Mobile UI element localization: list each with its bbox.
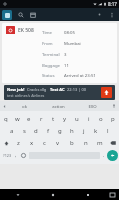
staticText: h bbox=[70, 127, 74, 135]
button[interactable]: a bbox=[5, 125, 18, 137]
staticText: e bbox=[27, 115, 31, 123]
staticText: b bbox=[70, 139, 74, 147]
staticText: g bbox=[58, 127, 62, 135]
button[interactable]: More options bbox=[95, 10, 104, 19]
button[interactable]: p bbox=[107, 113, 119, 125]
staticText: Cracks dlg bbox=[27, 87, 47, 92]
staticText: Arrived at 23:51 bbox=[64, 72, 96, 78]
button[interactable]: l bbox=[102, 125, 114, 137]
button[interactable]: v bbox=[51, 137, 65, 149]
staticText: EK 508 bbox=[18, 27, 34, 34]
staticText: From bbox=[42, 40, 64, 46]
button[interactable]: e bbox=[23, 113, 35, 125]
staticText: n bbox=[84, 139, 88, 147]
button[interactable]: Recent apps bbox=[70, 189, 105, 200]
staticText: New job! bbox=[7, 87, 25, 92]
button[interactable]: o bbox=[95, 113, 107, 125]
staticText: 11 bbox=[64, 62, 69, 68]
button[interactable]: d bbox=[30, 125, 42, 137]
button[interactable]: Emoji bbox=[19, 149, 28, 162]
button[interactable]: r bbox=[35, 113, 47, 125]
staticText: , bbox=[15, 152, 17, 159]
button[interactable]: Home bbox=[35, 189, 70, 200]
staticText: y bbox=[63, 115, 67, 123]
staticText: ?123 bbox=[3, 153, 12, 158]
staticText: z bbox=[17, 139, 20, 147]
staticText: x bbox=[30, 139, 34, 147]
staticText: EXO bbox=[88, 103, 97, 109]
button[interactable]: i bbox=[83, 113, 95, 125]
staticText: o bbox=[99, 115, 103, 123]
staticText: action bbox=[52, 103, 65, 109]
button[interactable]: q bbox=[0, 113, 11, 125]
button[interactable]: Search bbox=[16, 10, 26, 20]
button[interactable]: action bbox=[41, 101, 75, 111]
button[interactable]: k bbox=[90, 125, 102, 137]
staticText: . bbox=[103, 152, 105, 159]
staticText: u bbox=[75, 115, 79, 123]
button[interactable]: More suggestions bbox=[0, 101, 8, 111]
button[interactable]: j bbox=[78, 125, 90, 137]
button[interactable]: z bbox=[12, 137, 25, 149]
button[interactable]: y bbox=[59, 113, 71, 125]
staticText: w bbox=[15, 115, 20, 123]
staticText: i bbox=[88, 115, 90, 123]
staticText: c bbox=[43, 139, 46, 147]
button[interactable]: u bbox=[71, 113, 83, 125]
staticText: f bbox=[47, 127, 50, 135]
button[interactable]: Open alert bbox=[101, 87, 112, 98]
button[interactable]: c bbox=[38, 137, 51, 149]
button[interactable]: , bbox=[13, 149, 19, 162]
staticText: Terminal bbox=[42, 51, 64, 57]
button[interactable]: b bbox=[65, 137, 79, 149]
staticText: v bbox=[56, 139, 60, 147]
button[interactable]: Backspace bbox=[107, 137, 119, 149]
staticText: Mumbai bbox=[64, 40, 81, 46]
staticText: test airlines's Airlines bbox=[7, 93, 45, 98]
staticText: d bbox=[34, 127, 38, 135]
staticText: p bbox=[111, 115, 115, 123]
button[interactable]: New job! bbox=[4, 85, 115, 100]
staticText: s bbox=[23, 127, 26, 135]
staticText: Baggage bbox=[42, 62, 64, 68]
staticText: l bbox=[107, 127, 109, 135]
button[interactable]: x bbox=[25, 137, 38, 149]
button[interactable]: Shift bbox=[0, 137, 12, 149]
button[interactable]: Voice input bbox=[109, 101, 119, 111]
staticText: Test AC bbox=[50, 87, 65, 92]
staticText: t bbox=[52, 115, 55, 123]
button[interactable]: h bbox=[66, 125, 78, 137]
button[interactable]: m bbox=[93, 137, 107, 149]
button[interactable]: EXO bbox=[75, 101, 109, 111]
button[interactable]: Calendar bbox=[28, 10, 38, 20]
staticText: q bbox=[4, 115, 8, 123]
button[interactable]: g bbox=[54, 125, 66, 137]
button[interactable]: ok bbox=[8, 101, 41, 111]
staticText: 8:17 bbox=[108, 1, 117, 7]
button[interactable]: s bbox=[18, 125, 30, 137]
staticText: r bbox=[40, 115, 43, 123]
button[interactable]: ?123 bbox=[1, 149, 13, 162]
button[interactable]: Overflow menu bbox=[107, 10, 117, 20]
button[interactable]: . bbox=[101, 149, 107, 162]
button[interactable]: t bbox=[47, 113, 59, 125]
staticText: k bbox=[94, 127, 98, 135]
staticText: j bbox=[83, 127, 85, 135]
button[interactable]: w bbox=[11, 113, 23, 125]
button[interactable]: f bbox=[42, 125, 54, 137]
staticText: m bbox=[97, 139, 103, 147]
button[interactable]: Hide keyboard bbox=[105, 189, 119, 200]
button[interactable]: n bbox=[79, 137, 93, 149]
staticText: Status bbox=[42, 72, 64, 78]
staticText: ok bbox=[22, 103, 27, 109]
staticText: Time bbox=[42, 29, 64, 35]
staticText: a bbox=[10, 127, 14, 135]
staticText: 22:13 | 00 bbox=[67, 87, 87, 92]
button[interactable]: Back bbox=[0, 189, 35, 200]
button[interactable]: EK 508 bbox=[2, 23, 117, 83]
button[interactable]: Enter bbox=[107, 150, 118, 161]
staticText: 3 bbox=[64, 51, 67, 57]
button[interactable]: App icon bbox=[2, 10, 12, 20]
staticText: 08:05 bbox=[64, 29, 75, 35]
